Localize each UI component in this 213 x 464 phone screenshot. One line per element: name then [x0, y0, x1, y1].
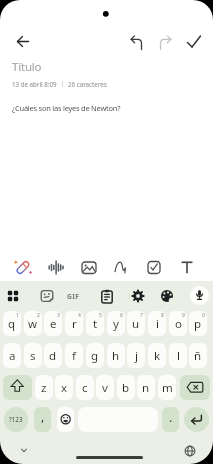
staticText: q: [8, 316, 16, 332]
staticText: 26 caracteres: [68, 80, 107, 88]
button[interactable]: [3, 375, 32, 400]
button[interactable]: s: [24, 343, 42, 368]
staticText: ?123: [9, 415, 23, 424]
staticText: 5: [99, 312, 102, 319]
button[interactable]: [126, 284, 150, 308]
staticText: f: [72, 348, 76, 364]
staticText: n: [142, 380, 150, 396]
button[interactable]: t: [86, 311, 104, 336]
button[interactable]: [57, 407, 74, 432]
staticText: Título: [12, 59, 42, 75]
staticText: ,: [41, 408, 45, 425]
button[interactable]: ,: [34, 407, 51, 432]
staticText: x: [61, 380, 68, 396]
staticText: 1: [16, 312, 19, 319]
button[interactable]: k: [148, 343, 166, 368]
button[interactable]: ñ: [189, 343, 207, 368]
staticText: m: [162, 380, 173, 396]
staticText: 7: [140, 312, 143, 319]
staticText: j: [135, 348, 138, 364]
button[interactable]: [155, 284, 179, 308]
button[interactable]: f: [65, 343, 83, 368]
button[interactable]: [190, 286, 209, 305]
button[interactable]: [125, 30, 151, 56]
staticText: z: [41, 380, 47, 396]
button[interactable]: v: [96, 375, 114, 400]
button[interactable]: x: [55, 375, 73, 400]
button[interactable]: [184, 407, 209, 432]
button[interactable]: [174, 254, 200, 280]
button[interactable]: c: [76, 375, 94, 400]
button[interactable]: [10, 28, 36, 54]
staticText: a: [9, 348, 16, 364]
button[interactable]: g: [86, 343, 104, 368]
button[interactable]: o: [169, 311, 187, 336]
staticText: o: [175, 316, 182, 332]
staticText: k: [154, 348, 161, 364]
button[interactable]: ?123: [4, 407, 28, 432]
staticText: GIF: [67, 292, 80, 301]
button[interactable]: b: [117, 375, 135, 400]
staticText: u: [132, 316, 140, 332]
staticText: ¿Cuáles son las leyes de Newton?: [12, 103, 121, 113]
button[interactable]: [35, 284, 59, 308]
button[interactable]: a: [3, 343, 21, 368]
button[interactable]: [180, 375, 210, 400]
button[interactable]: [43, 254, 69, 280]
button[interactable]: [76, 254, 102, 280]
button[interactable]: u: [127, 311, 145, 336]
staticText: d: [49, 348, 57, 364]
staticText: c: [82, 380, 88, 396]
button[interactable]: d: [44, 343, 62, 368]
button[interactable]: [181, 29, 207, 55]
staticText: 9: [182, 312, 185, 319]
staticText: e: [50, 316, 57, 332]
button[interactable]: [141, 254, 167, 280]
staticText: 13 de abril 8:09: [12, 80, 57, 88]
button[interactable]: n: [137, 375, 155, 400]
staticText: 0: [202, 312, 205, 319]
staticText: l: [177, 348, 180, 364]
staticText: r: [72, 316, 77, 332]
staticText: y: [113, 316, 119, 332]
staticText: 6: [120, 312, 123, 319]
staticText: w: [28, 316, 38, 332]
staticText: ñ: [194, 348, 202, 364]
staticText: t: [93, 316, 98, 332]
staticText: 2: [37, 312, 40, 319]
button[interactable]: [95, 284, 119, 308]
button[interactable]: [182, 443, 198, 459]
staticText: b: [122, 380, 130, 396]
button[interactable]: q: [3, 311, 21, 336]
button[interactable]: [10, 254, 36, 280]
staticText: 8: [161, 312, 164, 319]
button[interactable]: r: [65, 311, 83, 336]
staticText: 4: [78, 312, 81, 319]
button[interactable]: l: [169, 343, 187, 368]
button[interactable]: p: [189, 311, 207, 336]
button[interactable]: m: [158, 375, 176, 400]
button[interactable]: [151, 30, 177, 56]
button[interactable]: y: [107, 311, 125, 336]
staticText: h: [112, 348, 120, 364]
button[interactable]: i: [148, 311, 166, 336]
staticText: 3: [57, 312, 60, 319]
staticText: .: [169, 409, 173, 426]
button[interactable]: e: [44, 311, 62, 336]
button[interactable]: .: [162, 407, 179, 432]
button[interactable]: z: [35, 375, 53, 400]
staticText: p: [194, 316, 202, 332]
button[interactable]: h: [107, 343, 125, 368]
staticText: v: [102, 380, 108, 396]
button[interactable]: j: [127, 343, 145, 368]
staticText: g: [91, 348, 99, 364]
button[interactable]: [76, 456, 143, 459]
staticText: i: [156, 316, 159, 332]
button[interactable]: [16, 444, 32, 457]
button[interactable]: [1, 284, 25, 308]
button[interactable]: [78, 407, 158, 432]
staticText: s: [30, 348, 36, 364]
button[interactable]: w: [24, 311, 42, 336]
button[interactable]: [108, 254, 134, 280]
